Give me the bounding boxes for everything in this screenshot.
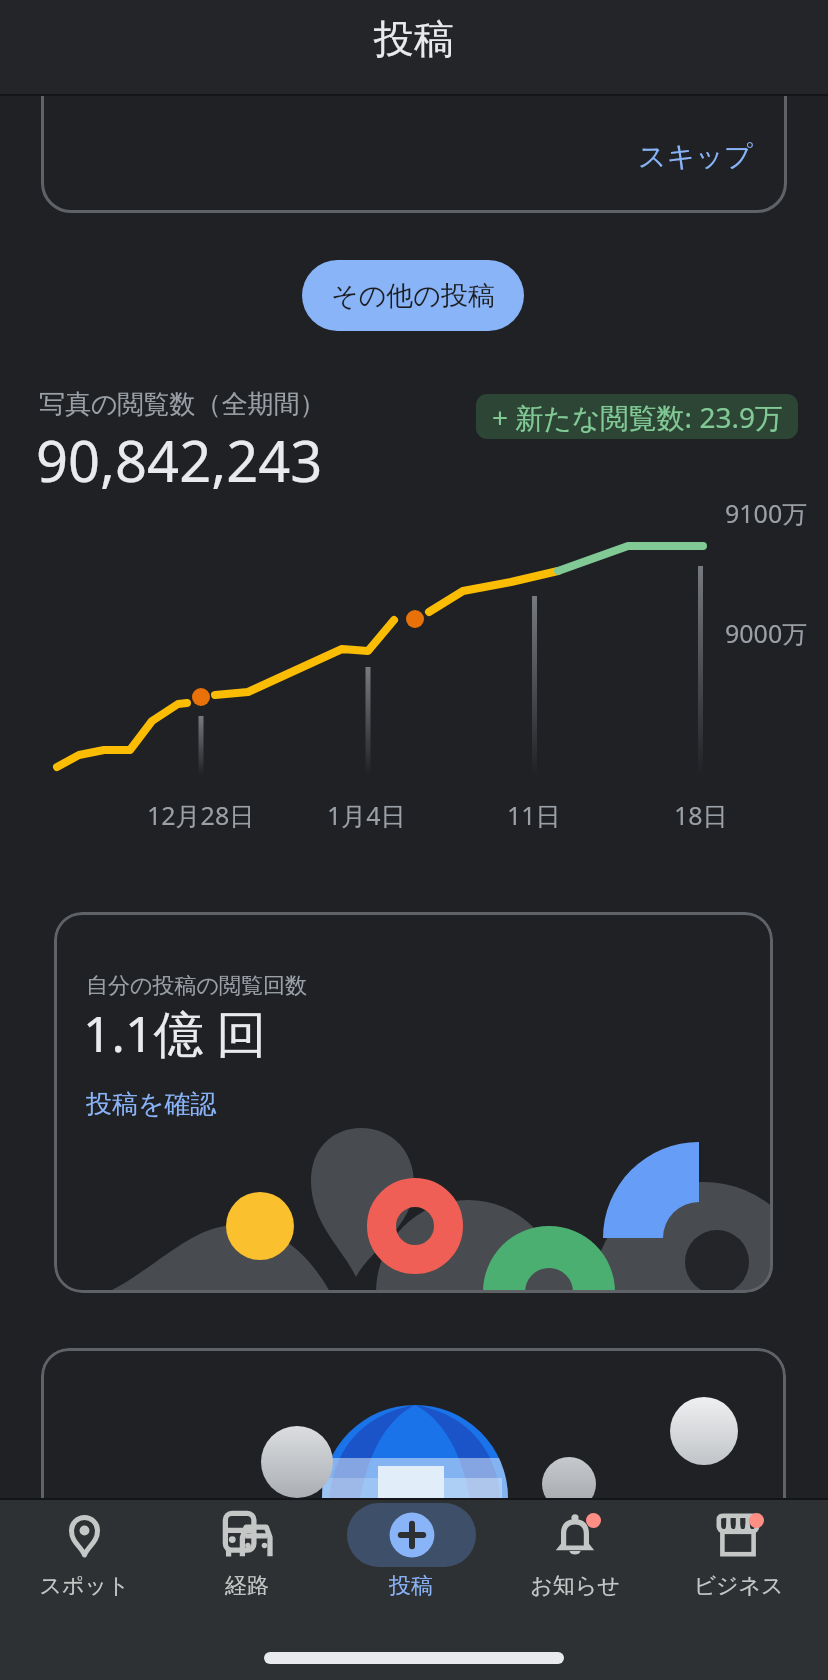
staticText: 自分の投稿の閲覧回数 (86, 972, 308, 1000)
staticText: 12月28日 (147, 798, 255, 832)
button[interactable]: お知らせ (495, 1503, 655, 1600)
staticText: 投稿を確認 (86, 1088, 217, 1121)
staticText: その他の投稿 (331, 279, 495, 313)
other: 経路 (224, 1512, 270, 1558)
button[interactable]: スキップ (41, 0, 787, 213)
staticText: 投稿 (374, 14, 454, 64)
button[interactable]: スポット (4, 1503, 164, 1600)
staticText: 9100万 (725, 496, 808, 530)
staticText: 投稿 (389, 1572, 433, 1600)
staticText: ビジネス (693, 1572, 784, 1600)
staticText: スキップ (638, 139, 753, 174)
other: お知らせ (555, 1515, 595, 1555)
staticText: 18日 (674, 798, 728, 832)
button[interactable]: 経路 (167, 1503, 327, 1600)
staticText: 9000万 (725, 616, 808, 650)
button[interactable]: 投稿 (331, 1503, 491, 1600)
button[interactable]: + 新たな閲覧数: 23.9万 (476, 394, 798, 439)
staticText: スポット (39, 1572, 130, 1600)
button[interactable] (41, 1348, 786, 1648)
button[interactable]: 自分の投稿の閲覧回数 (54, 912, 773, 1293)
button[interactable]: ビジネス (658, 1503, 818, 1600)
staticText: + 新たな閲覧数: 23.9万 (492, 398, 783, 436)
other: スポット (69, 1515, 100, 1556)
staticText: 1.1億 回 (83, 999, 267, 1067)
staticText: お知らせ (530, 1572, 620, 1600)
staticText: 写真の閲覧数（全期間） (39, 388, 326, 421)
staticText: 1月4日 (327, 798, 406, 832)
staticText: 90,842,243 (36, 422, 323, 498)
other: 投稿 (384, 1507, 440, 1563)
staticText: 経路 (225, 1572, 269, 1600)
staticText: 11日 (507, 798, 561, 832)
other: ビジネス (718, 1515, 758, 1555)
button[interactable]: その他の投稿 (302, 260, 524, 331)
